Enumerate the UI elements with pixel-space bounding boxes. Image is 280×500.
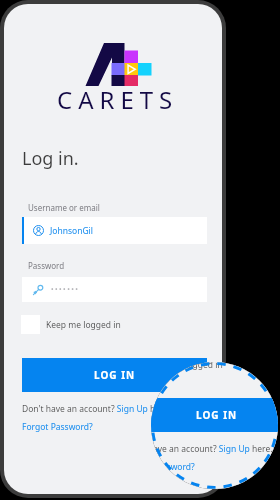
staticText: ••••••• xyxy=(51,285,80,295)
staticText: JohnsonGil xyxy=(50,225,94,237)
staticText: Password xyxy=(130,300,167,311)
staticText: Keep me logged in xyxy=(46,319,121,331)
button[interactable]: ••••••• xyxy=(124,317,280,342)
staticText: Username or email xyxy=(28,202,100,213)
staticText: Keep me logged in xyxy=(148,359,223,371)
button[interactable]: LOG IN xyxy=(22,358,207,392)
button[interactable]: Keep me logged in xyxy=(123,355,223,374)
button[interactable]: JohnsonGil xyxy=(124,257,280,284)
staticText: Password xyxy=(28,260,65,271)
button[interactable]: Forgot Password? xyxy=(124,461,195,473)
button[interactable]: Don't have an account? Sign Up here. xyxy=(22,403,171,415)
staticText: Username or email xyxy=(130,242,202,253)
staticText: LOG IN xyxy=(94,368,136,382)
staticText: CARETS xyxy=(159,123,280,156)
button[interactable]: LOG IN xyxy=(124,398,280,432)
button[interactable]: ••••••• xyxy=(22,277,207,302)
button[interactable]: JohnsonGil xyxy=(22,217,207,244)
staticText: CARETS xyxy=(57,83,179,116)
staticText: Log in. xyxy=(22,146,79,171)
button[interactable]: Don't have an account? Sign Up here. xyxy=(124,443,273,455)
staticText: LOG IN xyxy=(196,408,238,422)
button[interactable]: Forgot Password? xyxy=(22,421,93,433)
button[interactable]: Keep me logged in xyxy=(21,315,121,334)
